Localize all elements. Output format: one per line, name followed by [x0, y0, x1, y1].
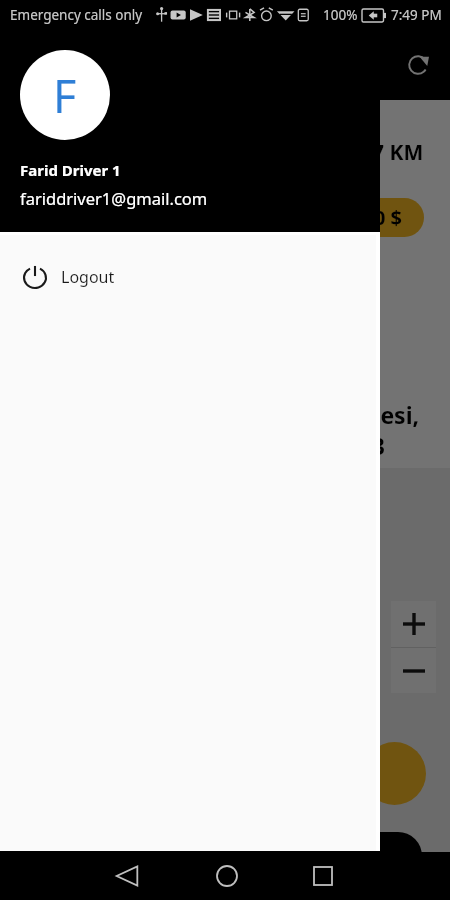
- button[interactable]: Logout: [0, 232, 380, 322]
- button[interactable]: Home: [203, 852, 251, 900]
- staticText: 100%: [323, 6, 358, 24]
- button[interactable]: Close navigation drawer: [0, 0, 450, 900]
- button[interactable]: Navigate: [363, 742, 426, 805]
- staticText: 100 $: [351, 204, 402, 231]
- button[interactable]: Refresh: [398, 45, 438, 85]
- button[interactable]: Recents: [299, 852, 347, 900]
- button[interactable]: Back: [103, 852, 151, 900]
- staticText: Kadikoy Mahallesi Bagdat caddesi, No:17 …: [24, 399, 420, 462]
- staticText: Logout: [61, 266, 115, 288]
- staticText: 17 KM: [360, 138, 424, 167]
- staticText: Emergency calls only: [10, 6, 143, 24]
- staticText: F: [53, 65, 77, 126]
- staticText: 7:49 PM: [391, 6, 442, 24]
- staticText: Farid Driver 1: [20, 160, 121, 180]
- button[interactable]: Zoom in: [391, 601, 436, 647]
- button[interactable]: Zoom out: [391, 648, 436, 693]
- staticText: fariddriver1@gmail.com: [20, 187, 208, 209]
